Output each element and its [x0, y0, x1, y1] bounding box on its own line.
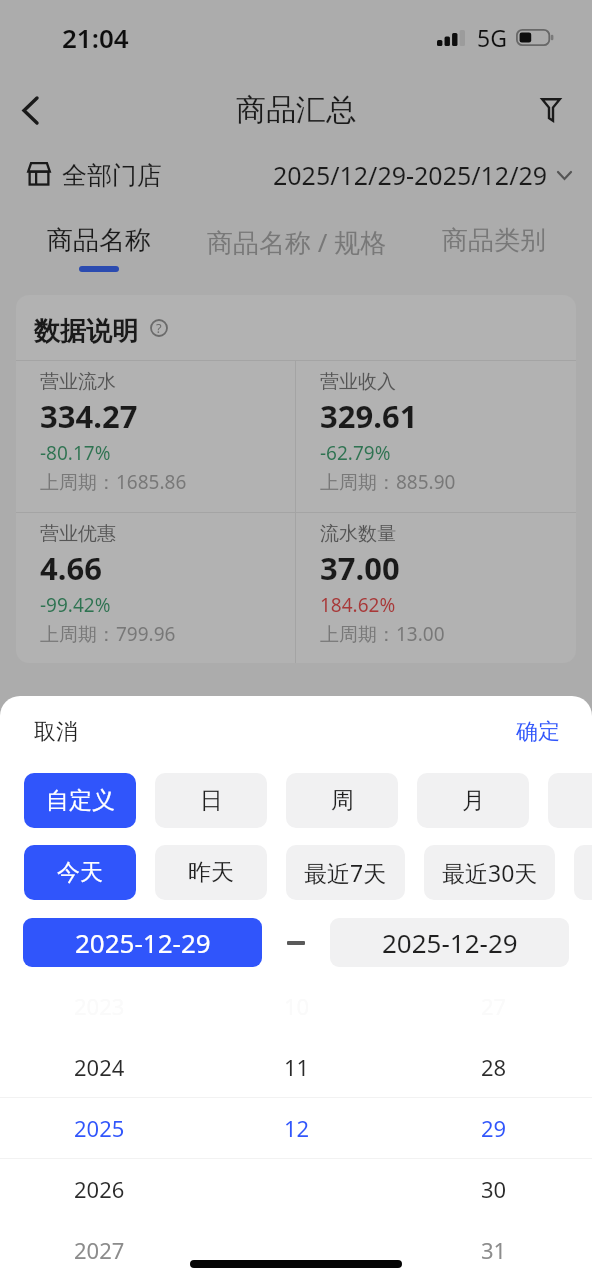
button[interactable]: 日 — [155, 773, 267, 828]
staticText: 自定义 — [46, 786, 115, 815]
staticText: 营业优惠 — [40, 522, 116, 546]
button[interactable]: 取消 — [18, 708, 94, 756]
staticText: 今天 — [57, 858, 103, 887]
staticText: 取消 — [34, 718, 78, 746]
staticText: 2025-12-29 — [382, 925, 518, 960]
staticText: 184.62% — [320, 592, 396, 618]
button[interactable]: Back — [0, 79, 60, 141]
button[interactable]: 今天 — [24, 845, 136, 900]
button[interactable]: 2025 — [0, 1097, 198, 1158]
button[interactable]: 2025-12-29 — [330, 918, 569, 967]
staticText: ? — [156, 319, 162, 337]
staticText: 2026 — [74, 1174, 125, 1204]
staticText: -99.42% — [40, 592, 111, 618]
staticText: 营业流水 — [40, 370, 116, 394]
button[interactable]: Filter — [520, 79, 582, 141]
staticText: 上周期：1685.86 — [40, 469, 187, 495]
button[interactable]: 全部门店 — [27, 160, 162, 191]
button[interactable]: Help — [150, 319, 168, 337]
staticText: 月 — [462, 786, 485, 815]
button[interactable]: 29 — [395, 1097, 592, 1158]
staticText: 上周期：13.00 — [320, 621, 445, 647]
staticText: 流水数量 — [320, 522, 396, 546]
staticText: 11 — [284, 1052, 310, 1082]
staticText: 12 — [284, 1113, 310, 1143]
staticText: 329.61 — [320, 395, 418, 437]
staticText: 昨天 — [188, 858, 234, 887]
staticText: 上周期：799.96 — [40, 621, 176, 647]
staticText: 日 — [200, 786, 223, 815]
staticText: 2025 — [74, 1113, 125, 1143]
staticText: -80.17% — [40, 440, 111, 466]
staticText: 2024 — [74, 1052, 125, 1082]
staticText: 2025-12-29 — [75, 925, 211, 960]
button[interactable]: 2024 — [0, 1036, 198, 1097]
button[interactable]: 11 — [198, 1036, 395, 1097]
staticText: 29 — [481, 1113, 507, 1143]
button[interactable]: 最近30天 — [424, 845, 555, 900]
button[interactable]: 周 — [286, 773, 398, 828]
staticText: 商品类别 — [442, 224, 546, 257]
staticText: 周 — [331, 786, 354, 815]
button[interactable]: 商品名称 — [0, 205, 198, 290]
button[interactable]: 2025-12-29 — [23, 918, 262, 967]
staticText: 确定 — [516, 718, 560, 746]
staticText: 上周期：885.90 — [320, 469, 456, 495]
button[interactable]: 昨天 — [155, 845, 267, 900]
button[interactable]: 31 — [395, 1219, 592, 1280]
button[interactable]: 商品类别 — [395, 205, 592, 290]
staticText: 28 — [481, 1052, 507, 1082]
staticText: 商品名称 — [47, 224, 151, 257]
staticText: 4.66 — [40, 547, 102, 589]
staticText: 数据说明 — [34, 315, 138, 348]
button[interactable]: 2027 — [0, 1219, 198, 1280]
staticText: 全部门店 — [62, 160, 162, 191]
staticText: 商品汇总 — [236, 91, 356, 129]
staticText: 2025/12/29-2025/12/29 — [273, 158, 548, 192]
staticText: 30 — [481, 1174, 507, 1204]
staticText: 营业收入 — [320, 370, 396, 394]
button[interactable]: 月 — [417, 773, 529, 828]
staticText: 31 — [481, 1235, 507, 1265]
button[interactable]: 28 — [395, 1036, 592, 1097]
button[interactable]: 30 — [395, 1158, 592, 1219]
staticText: 最近30天 — [442, 857, 538, 888]
button[interactable]: 2025/12/29-2025/12/29 — [273, 158, 572, 192]
button[interactable]: 确定 — [500, 708, 576, 756]
button[interactable]: 2026 — [0, 1158, 198, 1219]
staticText: 2027 — [74, 1235, 125, 1265]
staticText: 334.27 — [40, 395, 138, 437]
button[interactable]: 12 — [198, 1097, 395, 1158]
staticText: -62.79% — [320, 440, 391, 466]
button[interactable]: 商品名称 / 规格 — [198, 205, 395, 290]
staticText: 21:04 — [62, 20, 129, 55]
staticText: 37.00 — [320, 547, 400, 589]
button[interactable]: 自定义 — [24, 773, 136, 828]
staticText: 商品名称 / 规格 — [207, 224, 387, 260]
staticText: 最近7天 — [304, 857, 387, 888]
button[interactable]: 最近7天 — [286, 845, 405, 900]
staticText: 5G — [477, 22, 507, 53]
